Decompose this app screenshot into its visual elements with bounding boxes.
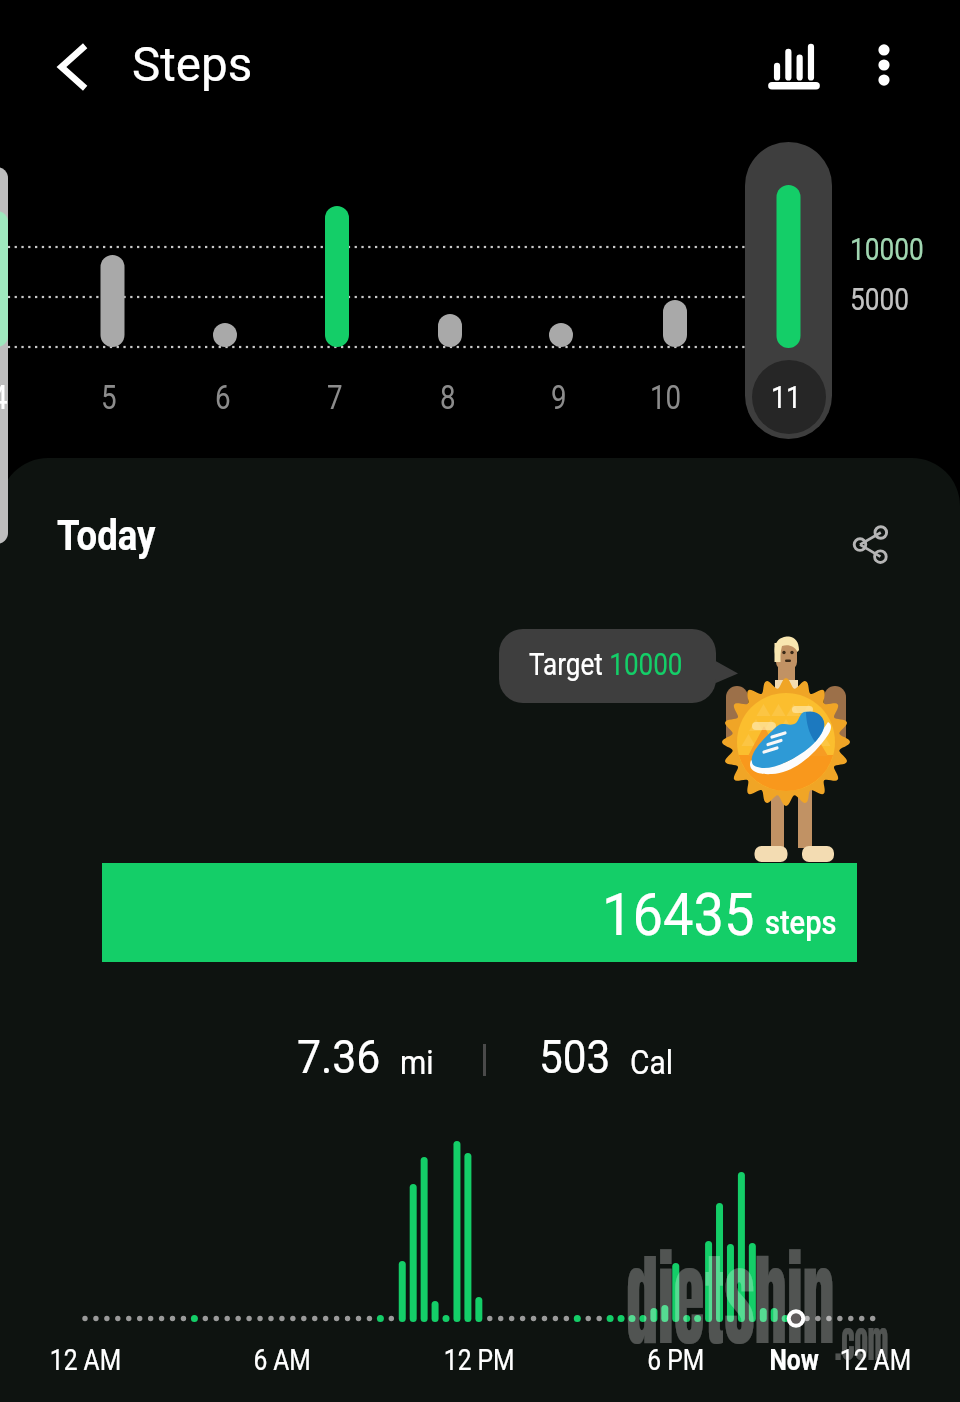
button[interactable]: 8 xyxy=(407,142,494,439)
staticText: 4 xyxy=(0,378,8,417)
staticText: dietshin xyxy=(626,1224,835,1376)
staticText: 6 AM xyxy=(253,1342,312,1377)
button[interactable]: 7 xyxy=(294,142,381,439)
staticText: 9 xyxy=(551,378,567,417)
staticText: 10000 xyxy=(850,230,924,268)
button[interactable]: Share xyxy=(838,512,902,576)
staticText: .com xyxy=(835,1309,889,1374)
button[interactable]: View chart xyxy=(762,33,826,97)
button[interactable]: Back xyxy=(38,31,110,103)
staticText: 12 AM xyxy=(840,1342,911,1377)
staticText: 5 xyxy=(101,378,117,417)
button[interactable]: 11 xyxy=(745,142,832,439)
button[interactable]: 6 xyxy=(182,142,269,439)
button[interactable]: 9 xyxy=(518,142,605,439)
staticText: 12 PM xyxy=(444,1342,515,1377)
staticText: 10 xyxy=(650,378,682,417)
button[interactable]: More options xyxy=(852,33,916,97)
staticText: 503 xyxy=(539,1029,611,1084)
staticText: 7.36 xyxy=(297,1029,381,1084)
staticText: 8 xyxy=(440,378,456,417)
button[interactable]: 10 xyxy=(632,142,719,439)
staticText: 16435 xyxy=(602,880,755,949)
staticText: 6 xyxy=(215,378,231,417)
staticText: mi xyxy=(400,1042,434,1082)
staticText: steps xyxy=(765,903,837,942)
button[interactable]: 5 xyxy=(68,142,155,439)
staticText: 12 AM xyxy=(50,1342,121,1377)
staticText: 7 xyxy=(327,378,343,417)
staticText: 11 xyxy=(771,378,801,416)
staticText: Target 10000 xyxy=(529,646,683,682)
staticText: Cal xyxy=(630,1042,673,1082)
staticText: Today xyxy=(57,511,156,560)
staticText: Now xyxy=(769,1342,819,1377)
staticText: Steps xyxy=(132,36,252,93)
staticText: 6 PM xyxy=(647,1342,705,1377)
button[interactable]: 16435 xyxy=(102,863,857,962)
staticText: 5000 xyxy=(850,280,909,318)
